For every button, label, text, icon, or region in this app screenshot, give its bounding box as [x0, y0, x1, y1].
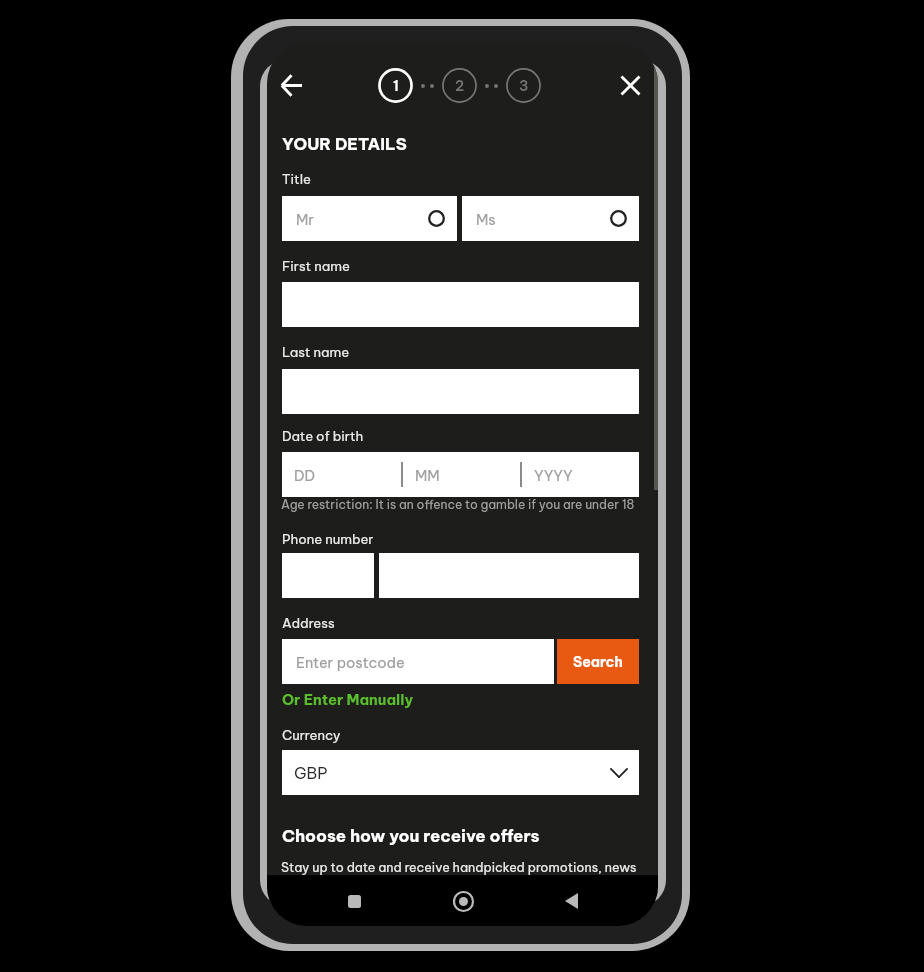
button[interactable]: Close: [606, 61, 654, 109]
staticText: MM: [415, 466, 440, 484]
button[interactable]: DD: [294, 452, 401, 497]
staticText: GBP: [294, 763, 328, 783]
staticText: Phone number: [282, 531, 374, 548]
staticText: Date of birth: [282, 428, 364, 445]
button[interactable]: Enter postcode: [296, 639, 554, 684]
staticText: Age restriction: It is an offence to gam…: [281, 497, 635, 512]
staticText: Choose how you receive offers: [282, 825, 540, 846]
button[interactable]: MM: [415, 452, 520, 497]
staticText: Currency: [282, 727, 341, 744]
button[interactable]: Or Enter Manually: [282, 690, 414, 708]
staticText: Address: [282, 615, 335, 632]
staticText: Search: [573, 653, 623, 671]
staticText: Ms: [476, 210, 496, 228]
button[interactable]: Back: [267, 61, 315, 109]
button[interactable]: Ms: [476, 196, 627, 241]
button[interactable]: Back: [549, 879, 593, 923]
staticText: 3: [519, 77, 529, 95]
staticText: Last name: [282, 344, 350, 361]
staticText: DD: [294, 466, 316, 484]
staticText: Enter postcode: [296, 653, 405, 671]
button[interactable]: YYYY: [534, 452, 639, 497]
button[interactable]: 2: [442, 68, 477, 103]
staticText: YYYY: [534, 466, 573, 484]
staticText: Stay up to date and receive handpicked p…: [281, 859, 637, 875]
button[interactable]: Home: [441, 879, 485, 923]
staticText: 1: [393, 77, 399, 95]
staticText: YOUR DETAILS: [282, 133, 407, 154]
button[interactable]: 1: [378, 68, 413, 103]
staticText: 2: [455, 77, 465, 95]
button[interactable]: GBP: [294, 750, 628, 795]
button[interactable]: Recent apps: [332, 879, 376, 923]
button[interactable]: 3: [506, 68, 541, 103]
button[interactable]: Mr: [296, 196, 445, 241]
staticText: First name: [282, 258, 350, 275]
staticText: Mr: [296, 210, 315, 228]
staticText: Title: [282, 171, 311, 188]
button[interactable]: Search: [557, 639, 639, 684]
